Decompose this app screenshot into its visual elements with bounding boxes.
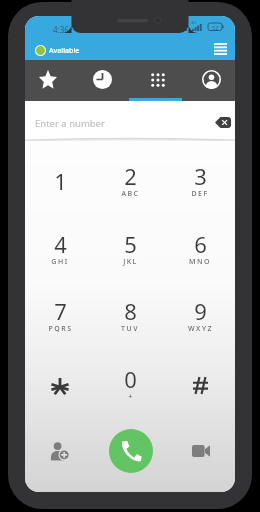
staticText: 7 <box>54 296 67 326</box>
button[interactable]: Add contact <box>39 431 79 471</box>
staticText: 9 <box>194 296 207 326</box>
staticText: 6 <box>194 229 207 259</box>
button[interactable]: Backspace <box>212 111 234 133</box>
button[interactable]: Call <box>109 429 153 473</box>
staticText: JKL <box>123 257 138 267</box>
button[interactable]: Dialpad <box>129 60 182 101</box>
staticText: 52 <box>212 24 219 31</box>
button[interactable]: 1 <box>25 147 95 214</box>
button[interactable]: 5 <box>95 215 165 282</box>
staticText: WXYZ <box>188 324 213 334</box>
staticText: 4:36 <box>53 24 69 35</box>
staticText: 8 <box>124 296 137 326</box>
button[interactable]: 2 <box>95 147 165 214</box>
button[interactable]: Favourites <box>25 60 77 101</box>
staticText: Available <box>49 46 80 56</box>
staticText: 4G <box>191 20 197 25</box>
staticText: GHI <box>51 257 69 267</box>
staticText: Enter a number <box>35 117 105 130</box>
staticText: ABC <box>121 189 140 199</box>
staticText: 5 <box>124 229 137 259</box>
button[interactable] <box>165 350 235 417</box>
staticText: PQRS <box>48 324 73 334</box>
staticText: MNO <box>189 257 211 267</box>
button[interactable]: Recents <box>77 60 129 101</box>
button[interactable] <box>25 350 95 417</box>
staticText: 0 <box>124 364 137 394</box>
button[interactable]: 4 <box>25 215 95 282</box>
button[interactable]: 8 <box>95 282 165 349</box>
staticText: 1 <box>54 166 67 196</box>
staticText: DEF <box>191 189 209 199</box>
staticText: 2 <box>124 161 137 191</box>
button[interactable]: 7 <box>25 282 95 349</box>
button[interactable]: Contacts <box>182 60 235 101</box>
staticText: 4 <box>54 229 67 259</box>
staticText: + <box>128 392 134 402</box>
staticText: 3 <box>194 161 207 191</box>
button[interactable]: Menu <box>206 38 235 60</box>
button[interactable]: 9 <box>165 282 235 349</box>
button[interactable]: 0 <box>95 350 165 417</box>
staticText: TUV <box>121 324 139 334</box>
button[interactable]: 6 <box>165 215 235 282</box>
button[interactable]: 3 <box>165 147 235 214</box>
button[interactable]: Video call <box>181 431 221 471</box>
button[interactable]: Enter a number <box>25 101 235 141</box>
